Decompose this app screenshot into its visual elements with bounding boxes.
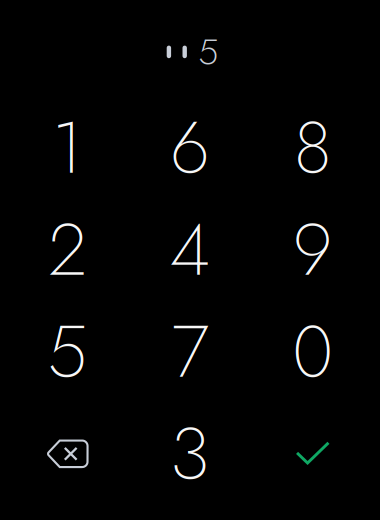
- button[interactable]: 0: [251, 301, 374, 403]
- button[interactable]: 1: [6, 97, 129, 199]
- staticText: 1: [52, 96, 83, 200]
- button[interactable]: 3: [129, 403, 251, 505]
- staticText: 8: [294, 96, 332, 200]
- button[interactable]: 6: [129, 97, 251, 199]
- staticText: 5: [47, 300, 87, 404]
- button[interactable]: 4: [129, 199, 251, 301]
- button[interactable]: Confirm: [251, 403, 374, 505]
- button[interactable]: 7: [129, 301, 251, 403]
- staticText: 7: [171, 300, 208, 404]
- staticText: 5: [198, 26, 218, 78]
- button[interactable]: 5: [6, 301, 129, 403]
- staticText: 4: [169, 198, 210, 302]
- staticText: 9: [293, 198, 333, 302]
- staticText: 6: [170, 96, 210, 200]
- button[interactable]: Delete: [6, 403, 129, 505]
- staticText: 3: [170, 402, 210, 506]
- staticText: 0: [292, 300, 333, 404]
- button[interactable]: 9: [251, 199, 374, 301]
- button[interactable]: 8: [251, 97, 374, 199]
- staticText: 2: [48, 198, 86, 302]
- button[interactable]: 2: [6, 199, 129, 301]
